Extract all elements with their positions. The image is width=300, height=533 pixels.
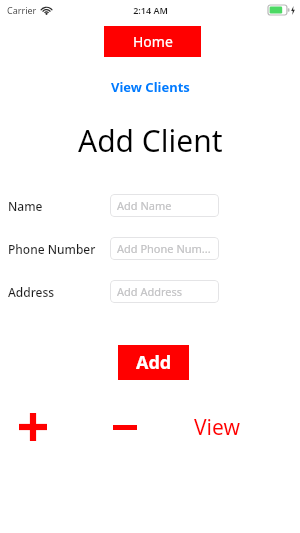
button[interactable]: Add Phone Num... bbox=[110, 237, 219, 260]
staticText: Add Client bbox=[78, 120, 223, 161]
staticText: Add Address bbox=[117, 284, 183, 299]
staticText: Address bbox=[8, 284, 55, 300]
staticText: Add Phone Num... bbox=[117, 241, 211, 256]
button[interactable]: View bbox=[194, 413, 240, 442]
staticText: Home bbox=[133, 32, 173, 51]
staticText: View bbox=[194, 413, 240, 442]
button[interactable]: Add bbox=[118, 345, 189, 380]
button[interactable]: Remove bbox=[106, 408, 144, 446]
staticText: View Clients bbox=[111, 78, 190, 96]
staticText: Phone Number bbox=[8, 241, 96, 257]
staticText: Add bbox=[136, 350, 172, 375]
staticText: Add Name bbox=[117, 198, 172, 213]
staticText: 2:14 AM bbox=[133, 4, 168, 16]
button[interactable]: Add Name bbox=[110, 194, 219, 217]
button[interactable]: Home bbox=[104, 26, 201, 57]
button[interactable]: Add Address bbox=[110, 280, 219, 303]
button[interactable]: View Clients bbox=[0, 78, 300, 96]
staticText: Carrier bbox=[7, 4, 37, 16]
button[interactable]: Add bbox=[14, 408, 52, 446]
staticText: Name bbox=[8, 198, 43, 214]
